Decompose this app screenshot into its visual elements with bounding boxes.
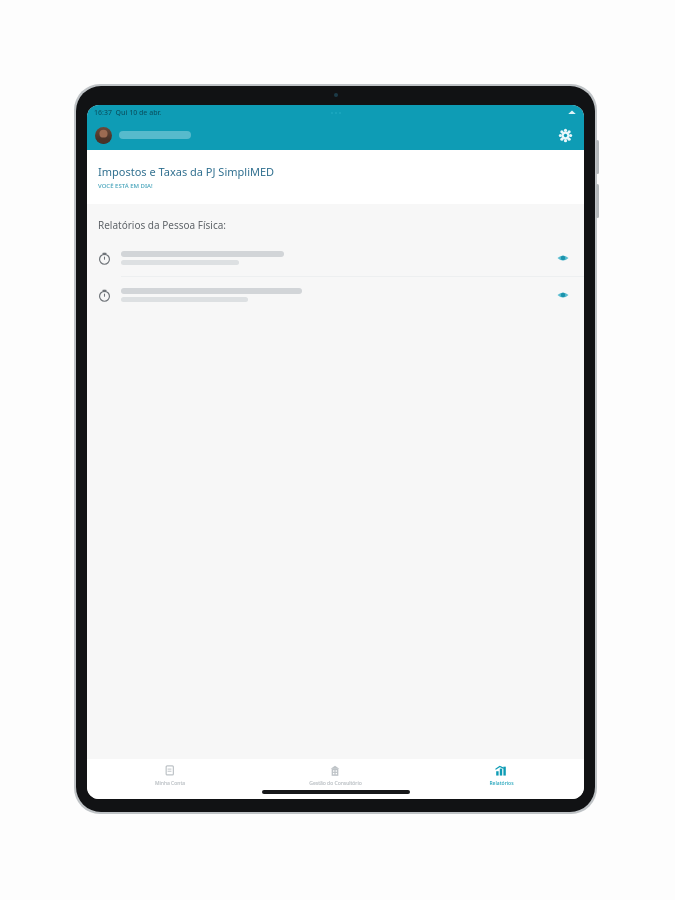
button[interactable]: Gestão do Consultório bbox=[252, 759, 418, 799]
button[interactable]: Impostos e Taxas da PJ SimpliMED bbox=[87, 150, 584, 204]
button[interactable]: Relatórios bbox=[418, 759, 584, 799]
staticText: Relatórios da Pessoa Física: bbox=[98, 218, 226, 232]
staticText: Impostos e Taxas da PJ SimpliMED bbox=[98, 164, 275, 179]
button[interactable]: Visualizar relatório bbox=[87, 277, 584, 313]
button[interactable]: Configurações bbox=[554, 124, 576, 146]
button[interactable]: Visualizar relatório bbox=[553, 248, 573, 268]
staticText: Relatórios bbox=[439, 780, 564, 787]
staticText: Gestão do Consultório bbox=[273, 780, 398, 787]
button[interactable]: Perfil bbox=[95, 127, 112, 144]
staticText: 16:37 Qui 10 de abr. bbox=[94, 108, 162, 118]
button[interactable]: Visualizar relatório bbox=[87, 240, 584, 276]
staticText: Minha Conta bbox=[108, 780, 232, 787]
staticText: VOCÊ ESTÁ EM DIA! bbox=[98, 182, 153, 190]
button[interactable]: Minha Conta bbox=[87, 759, 252, 799]
button[interactable]: Visualizar relatório bbox=[553, 285, 573, 305]
